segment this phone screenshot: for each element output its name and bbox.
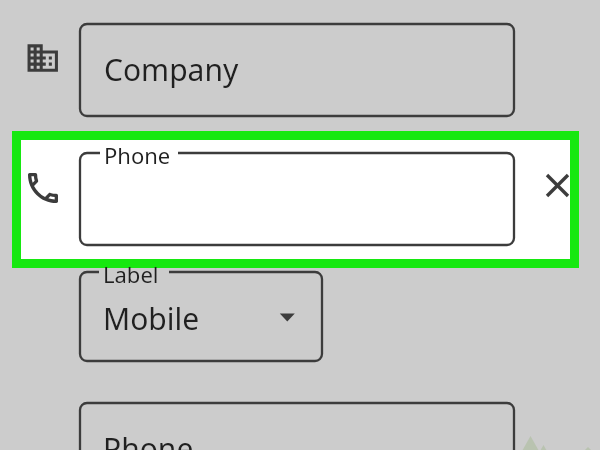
button[interactable]: Clear phone number — [544, 172, 571, 199]
staticText: Phone — [104, 140, 171, 170]
button[interactable]: Label, Mobile — [70, 262, 332, 372]
staticText: Company — [104, 49, 239, 90]
staticText: Label — [103, 259, 159, 289]
button[interactable]: Company — [0, 10, 530, 130]
staticText: Phone — [103, 428, 194, 450]
button[interactable]: Phone — [70, 395, 530, 450]
button[interactable]: Phone — [12, 131, 579, 268]
staticText: Mobile — [103, 298, 200, 339]
